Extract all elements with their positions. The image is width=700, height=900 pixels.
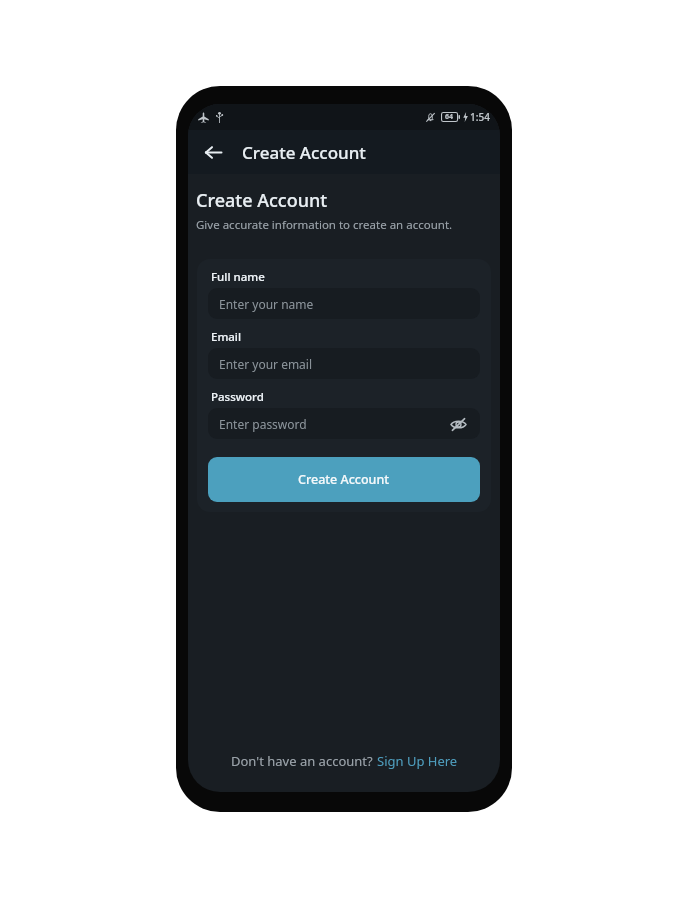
button[interactable]: Back [196,135,230,169]
staticText: Sign Up Here [377,752,458,770]
staticText: Full name [211,269,265,285]
staticText: 64 [445,112,454,122]
button[interactable]: Create Account [208,457,480,502]
staticText: Give accurate information to create an a… [196,217,453,233]
staticText: Create Account [298,471,390,488]
staticText: Enter your email [219,356,469,372]
button[interactable]: Enter password [208,408,480,439]
staticText: Create Account [196,188,328,213]
staticText: Enter your name [219,296,469,312]
staticText: Enter password [219,416,447,432]
staticText: Email [211,329,242,345]
staticText: Password [211,389,264,405]
staticText: Create Account [242,141,366,164]
staticText: 1:54 [470,110,490,124]
button[interactable]: Enter your email [208,348,480,379]
button[interactable]: Don't have an account? [188,746,500,776]
button[interactable]: Show password [447,413,469,435]
button[interactable]: Enter your name [208,288,480,319]
staticText: Don't have an account? [231,752,377,770]
